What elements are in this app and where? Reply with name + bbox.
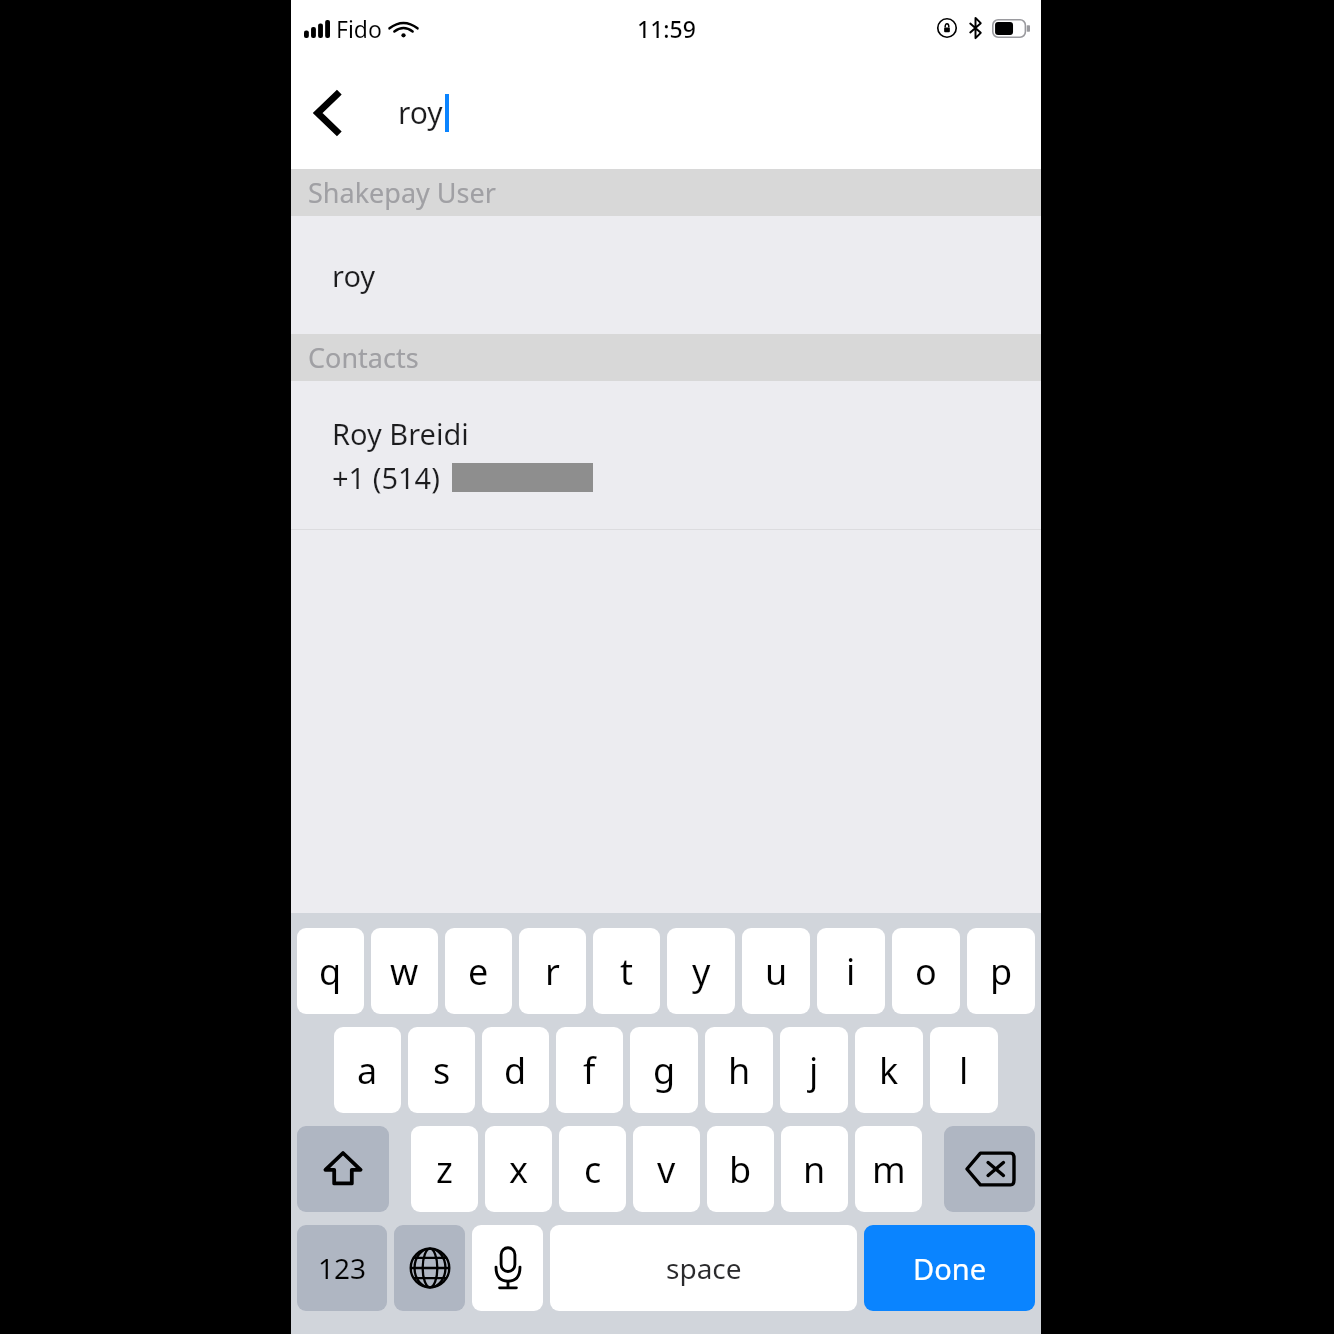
staticText: t	[620, 947, 633, 996]
staticText: p	[990, 947, 1013, 996]
button[interactable]: Back	[295, 81, 359, 145]
staticText: v	[657, 1145, 676, 1194]
button[interactable]: Done	[864, 1225, 1035, 1311]
staticText: space	[666, 1249, 742, 1287]
button[interactable]: Roy Breidi	[291, 381, 1041, 529]
button[interactable]: r	[519, 928, 586, 1014]
button[interactable]: s	[408, 1027, 475, 1113]
button[interactable]: b	[707, 1126, 774, 1212]
button[interactable]: roy	[291, 216, 1041, 334]
button[interactable]: x	[485, 1126, 552, 1212]
staticText: u	[765, 947, 788, 996]
button[interactable]: a	[334, 1027, 401, 1113]
staticText: o	[915, 947, 937, 996]
button[interactable]: Shift	[297, 1126, 389, 1212]
staticText: +1 (514)	[332, 458, 440, 497]
button[interactable]: d	[482, 1027, 549, 1113]
button[interactable]: k	[855, 1027, 923, 1113]
staticText: Done	[913, 1249, 986, 1288]
button[interactable]: l	[930, 1027, 998, 1113]
button[interactable]: roy	[398, 92, 449, 133]
staticText: b	[729, 1145, 752, 1194]
staticText: g	[653, 1046, 676, 1095]
staticText: w	[390, 947, 419, 996]
button[interactable]: c	[559, 1126, 626, 1212]
staticText: s	[433, 1046, 451, 1095]
staticText: x	[509, 1145, 529, 1194]
button[interactable]: o	[892, 928, 960, 1014]
staticText: 123	[318, 1249, 367, 1287]
staticText: Roy Breidi	[332, 414, 469, 453]
button[interactable]: Backspace	[944, 1126, 1035, 1212]
staticText: 11:59	[637, 13, 696, 44]
staticText: Contacts	[308, 339, 419, 376]
button[interactable]: Next keyboard	[394, 1225, 465, 1311]
staticText: m	[872, 1145, 906, 1194]
button[interactable]: n	[781, 1126, 848, 1212]
button[interactable]: t	[593, 928, 660, 1014]
staticText: c	[584, 1145, 602, 1194]
staticText: roy	[398, 92, 443, 133]
staticText: z	[436, 1145, 453, 1194]
staticText: d	[504, 1046, 527, 1095]
staticText: l	[959, 1046, 969, 1095]
staticText: q	[319, 947, 342, 996]
button[interactable]: f	[556, 1027, 623, 1113]
button[interactable]: space	[550, 1225, 857, 1311]
button[interactable]: w	[371, 928, 438, 1014]
staticText: e	[468, 947, 489, 996]
button[interactable]: j	[780, 1027, 848, 1113]
staticText: n	[803, 1145, 826, 1194]
button[interactable]: Dictate	[472, 1225, 543, 1311]
staticText: k	[879, 1046, 899, 1095]
staticText: f	[583, 1046, 596, 1095]
staticText: i	[846, 947, 856, 996]
button[interactable]: p	[967, 928, 1035, 1014]
staticText: h	[728, 1046, 751, 1095]
staticText: roy	[332, 256, 376, 295]
button[interactable]: g	[630, 1027, 698, 1113]
button[interactable]: u	[742, 928, 810, 1014]
button[interactable]: z	[411, 1126, 478, 1212]
staticText: r	[545, 947, 560, 996]
button[interactable]: y	[667, 928, 735, 1014]
button[interactable]: e	[445, 928, 512, 1014]
button[interactable]: 123	[297, 1225, 387, 1311]
staticText: Fido	[336, 13, 382, 44]
button[interactable]: i	[817, 928, 885, 1014]
button[interactable]: h	[705, 1027, 773, 1113]
button[interactable]: q	[297, 928, 364, 1014]
staticText: a	[357, 1046, 378, 1095]
button[interactable]: m	[855, 1126, 922, 1212]
staticText: y	[692, 947, 711, 996]
button[interactable]: v	[633, 1126, 700, 1212]
staticText: Shakepay User	[308, 174, 496, 211]
staticText: j	[809, 1046, 819, 1095]
